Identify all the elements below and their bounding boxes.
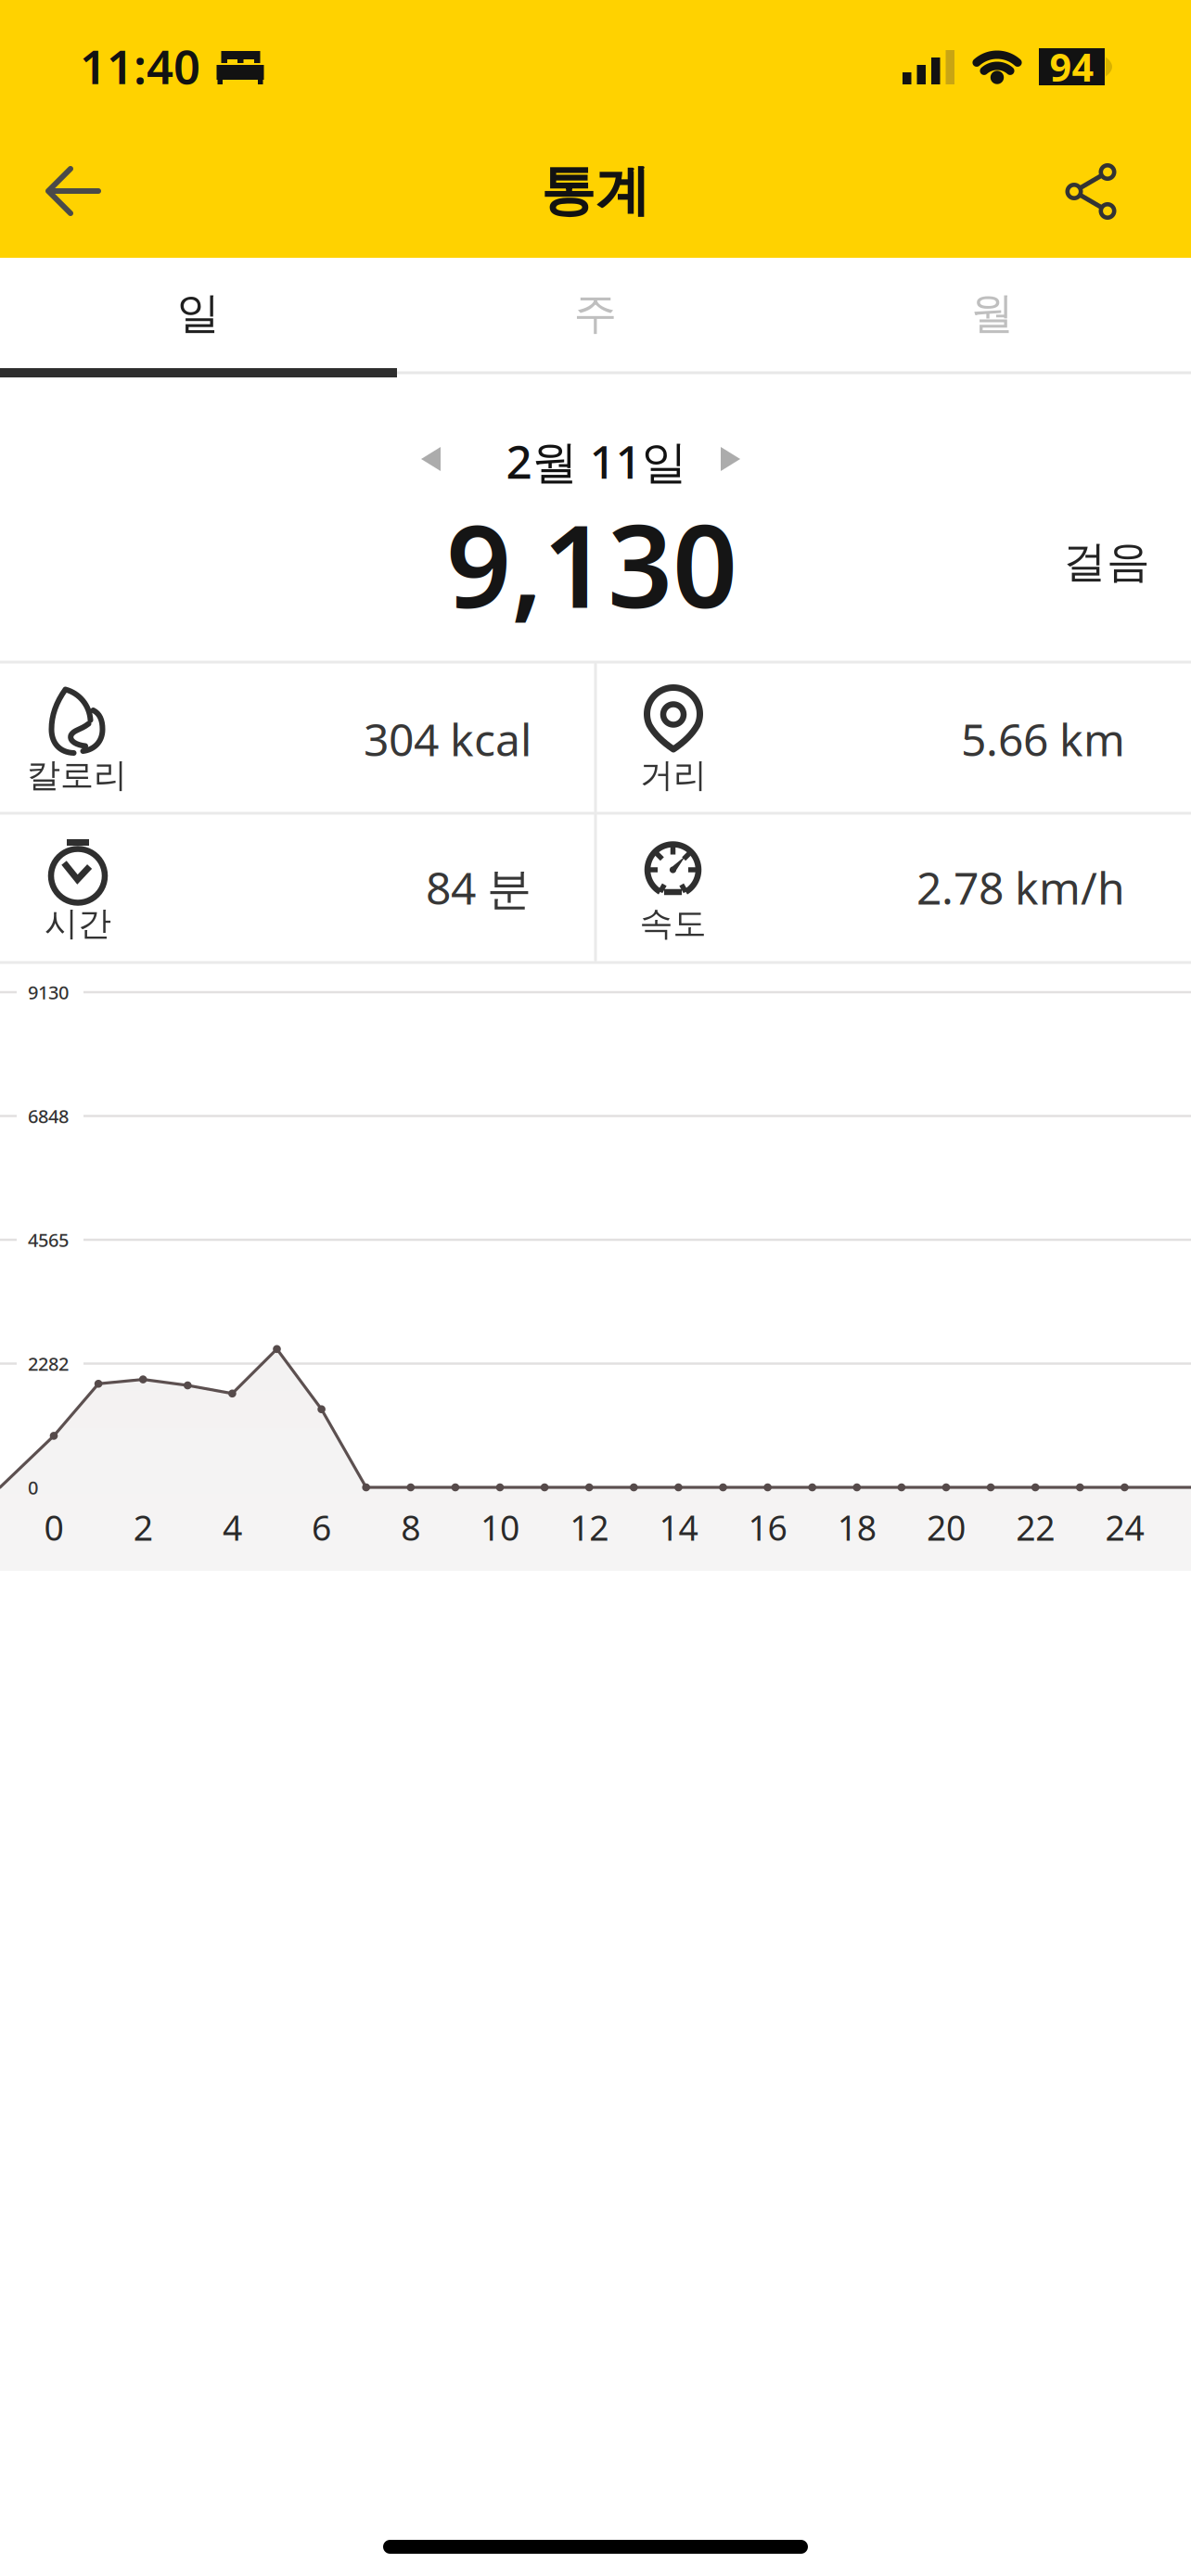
staticText: 일	[177, 287, 220, 340]
staticText: 18	[837, 1504, 876, 1550]
button[interactable]: Next day	[710, 439, 751, 479]
staticText: 10	[480, 1504, 519, 1550]
staticText: 8	[401, 1504, 420, 1550]
staticText: 24	[1105, 1504, 1144, 1550]
button[interactable]: Previous day	[410, 439, 451, 479]
staticText: 84 분	[426, 858, 531, 917]
button[interactable]: Share	[1062, 163, 1120, 220]
button[interactable]: Back	[43, 162, 104, 220]
button[interactable]: 월	[794, 258, 1191, 377]
staticText: 시간	[45, 903, 111, 944]
staticText: 5.66 km	[961, 709, 1125, 769]
staticText: 20	[927, 1504, 966, 1550]
staticText: 6848	[28, 1104, 69, 1128]
staticText: 4	[223, 1504, 242, 1550]
staticText: 6	[312, 1504, 331, 1550]
staticText: 16	[748, 1504, 787, 1550]
staticText: 0	[28, 1475, 38, 1500]
staticText: 통계	[541, 158, 650, 224]
staticText: 94	[1050, 41, 1094, 92]
staticText: 걸음	[1063, 535, 1150, 588]
button[interactable]: 주	[397, 258, 794, 377]
staticText: 속도	[640, 903, 706, 944]
staticText: 2월 11일	[506, 430, 687, 491]
staticText: 14	[659, 1504, 698, 1550]
staticText: 0	[44, 1504, 64, 1550]
staticText: 2282	[28, 1351, 69, 1376]
staticText: 거리	[640, 755, 707, 796]
staticText: 월	[971, 287, 1014, 340]
staticText: 22	[1016, 1504, 1055, 1550]
button[interactable]: 일	[0, 258, 397, 377]
staticText: 9130	[28, 980, 69, 1005]
staticText: 주	[574, 287, 617, 340]
staticText: 칼로리	[27, 755, 127, 796]
staticText: 9,130	[446, 488, 737, 639]
staticText: 2	[133, 1504, 153, 1550]
staticText: 11:40	[80, 35, 200, 97]
staticText: 12	[570, 1504, 609, 1550]
staticText: 2.78 km/h	[916, 858, 1125, 917]
staticText: 304 kcal	[364, 709, 531, 769]
staticText: 4565	[28, 1227, 69, 1252]
